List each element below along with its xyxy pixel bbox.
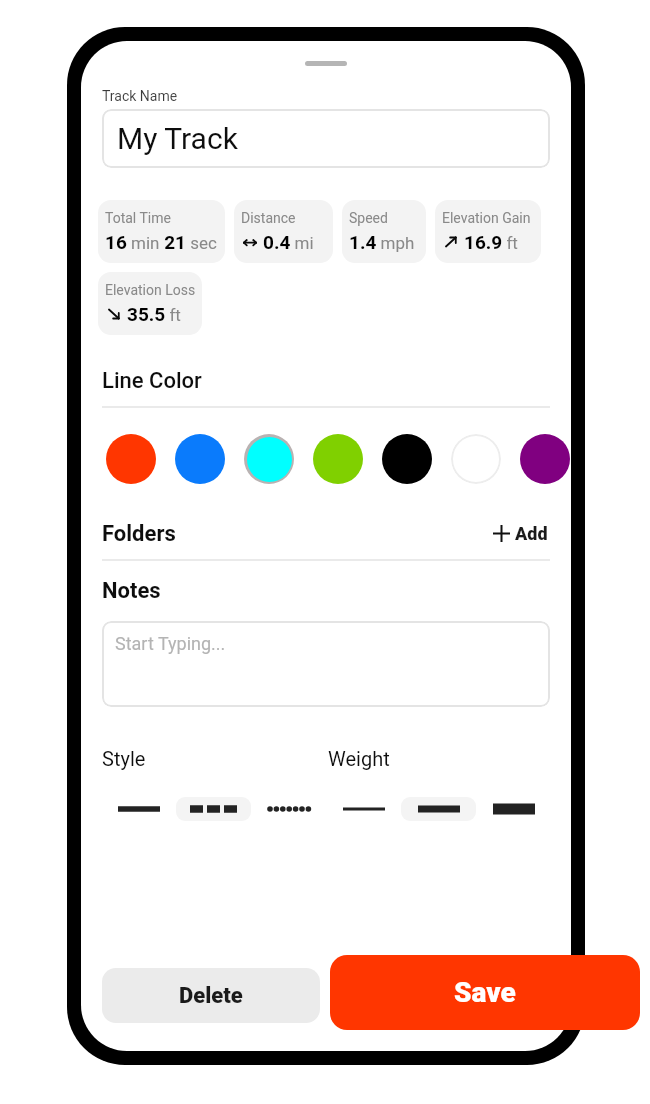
button[interactable]: Line colour bbox=[520, 434, 570, 484]
staticText: Notes bbox=[102, 578, 161, 604]
button[interactable]: My Track bbox=[102, 109, 550, 168]
button[interactable]: Line style option bbox=[251, 797, 326, 821]
staticText: Delete bbox=[179, 983, 243, 1009]
staticText: Elevation Gain bbox=[442, 210, 531, 226]
button[interactable]: Elevation Loss bbox=[98, 272, 202, 335]
staticText: 35.5 ft bbox=[127, 303, 181, 325]
button[interactable]: Line colour bbox=[313, 434, 363, 484]
button[interactable]: Line colour bbox=[451, 434, 501, 484]
staticText: Elevation Loss bbox=[105, 282, 196, 298]
staticText: Speed bbox=[349, 210, 388, 226]
button[interactable]: Save bbox=[330, 955, 640, 1030]
staticText: Start Typing... bbox=[115, 633, 226, 654]
button[interactable]: Line style option bbox=[401, 797, 476, 821]
button[interactable]: Distance bbox=[234, 200, 333, 263]
button[interactable]: Add bbox=[491, 519, 550, 548]
button[interactable]: Line style option bbox=[476, 797, 551, 821]
button[interactable]: Line colour bbox=[106, 434, 156, 484]
button[interactable]: Line colour bbox=[175, 434, 225, 484]
staticText: Save bbox=[454, 976, 516, 1009]
button[interactable]: Speed bbox=[342, 200, 426, 263]
staticText: 16.9 ft bbox=[464, 231, 518, 253]
button[interactable]: Elevation Gain bbox=[435, 200, 541, 263]
staticText: Line Color bbox=[102, 368, 202, 394]
staticText: Weight bbox=[328, 747, 390, 770]
staticText: 0.4 mi bbox=[263, 231, 314, 253]
button[interactable]: Line style option bbox=[176, 797, 251, 821]
staticText: 16 min 21 sec bbox=[105, 231, 217, 253]
button[interactable]: Line colour bbox=[244, 434, 294, 484]
button[interactable]: Total Time bbox=[98, 200, 225, 263]
staticText: Folders bbox=[102, 521, 176, 547]
button[interactable]: Delete bbox=[102, 968, 320, 1023]
button[interactable]: Start Typing... bbox=[102, 621, 550, 707]
staticText: Distance bbox=[241, 210, 296, 226]
staticText: Track Name bbox=[102, 88, 178, 104]
button[interactable]: Line style option bbox=[101, 797, 176, 821]
staticText: Total Time bbox=[105, 210, 171, 226]
staticText: 1.4 mph bbox=[349, 231, 415, 253]
button[interactable]: Line colour bbox=[382, 434, 432, 484]
button[interactable]: Line style option bbox=[326, 797, 401, 821]
staticText: Add bbox=[515, 523, 548, 544]
staticText: My Track bbox=[117, 121, 238, 156]
staticText: Style bbox=[102, 747, 146, 770]
